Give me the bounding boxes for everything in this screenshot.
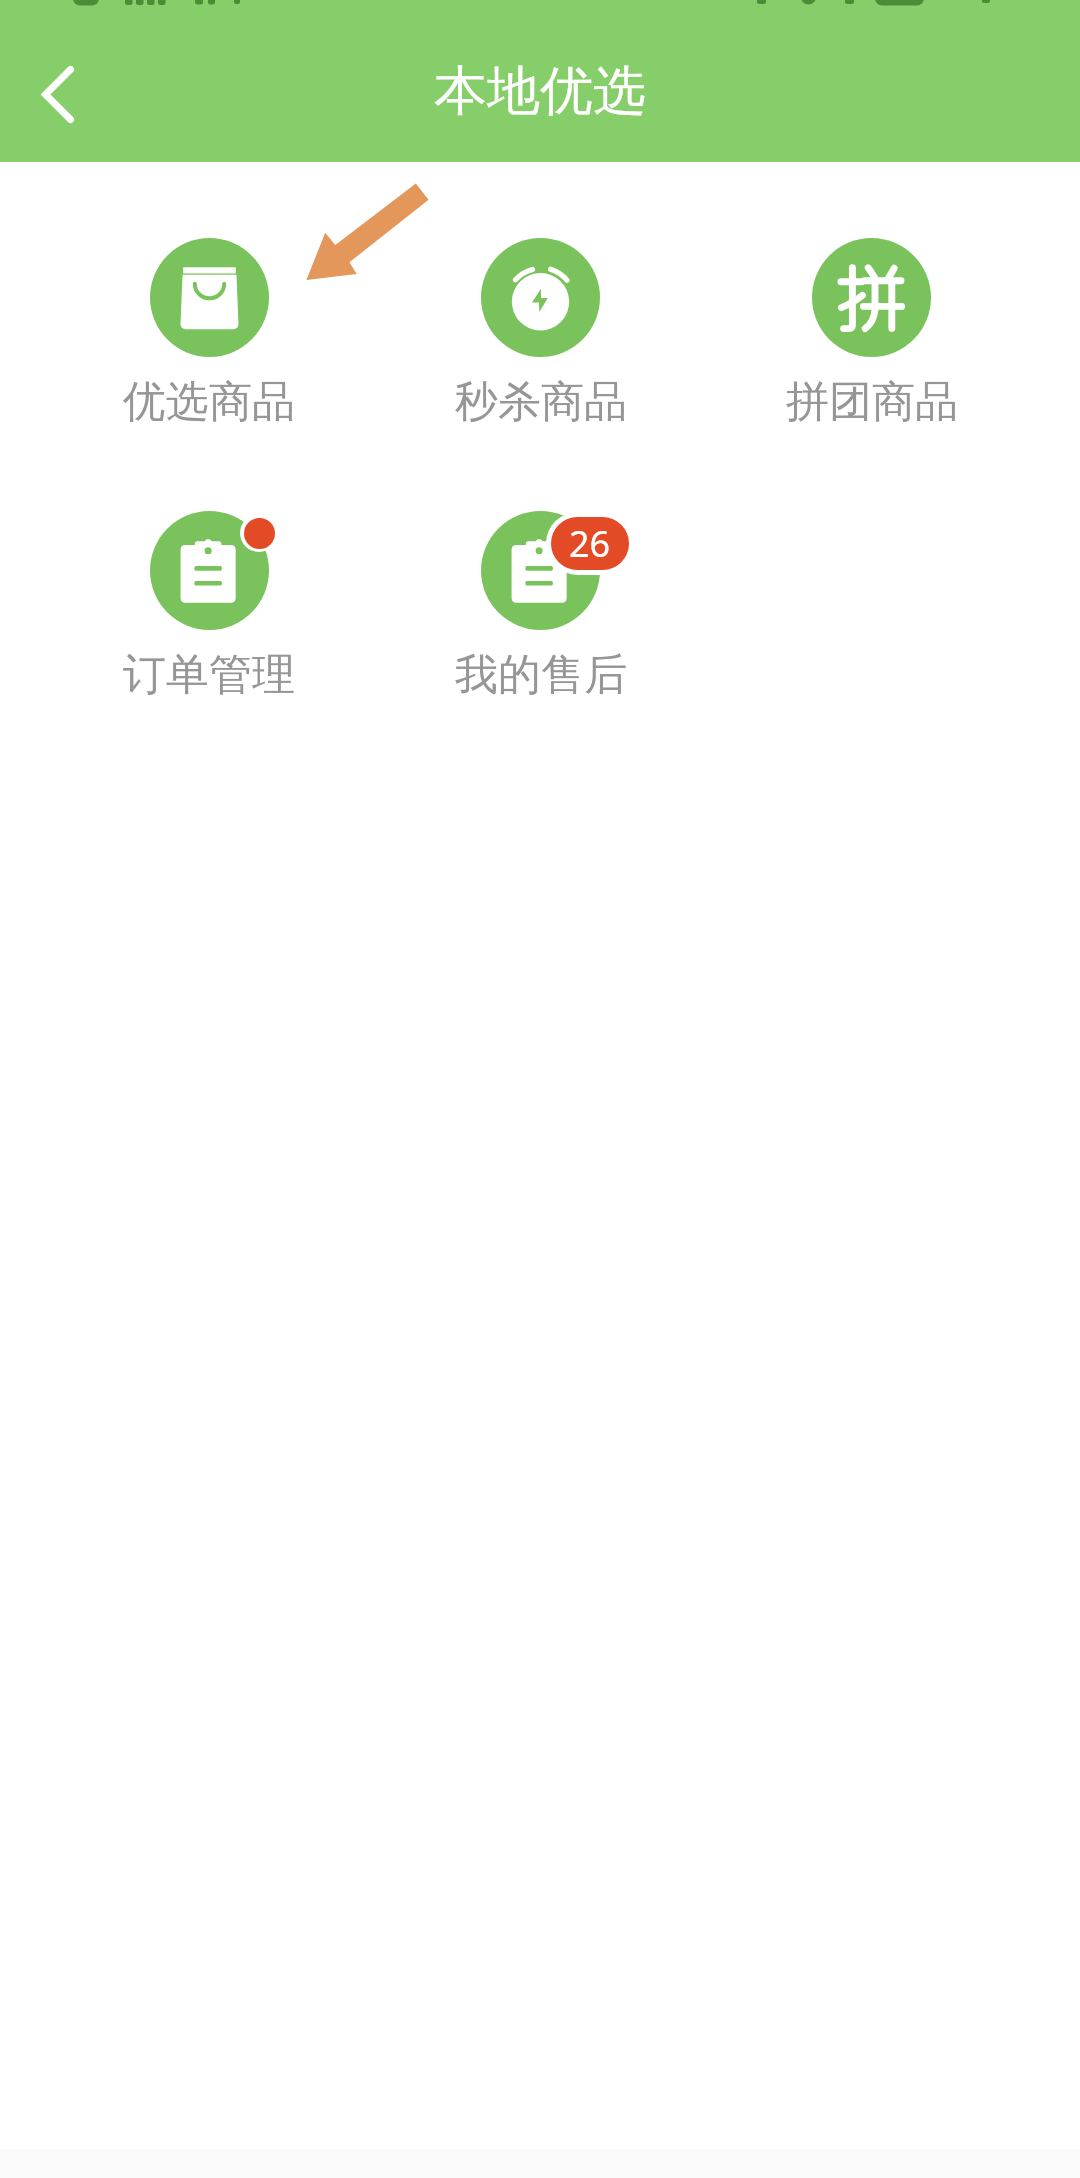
staticText: 本地优选 [434, 58, 646, 125]
button[interactable]: 优选商品 [43, 238, 375, 429]
button[interactable]: 秒杀商品 [375, 238, 706, 429]
button[interactable]: 26 [375, 511, 706, 702]
button[interactable]: 拼团商品 [706, 238, 1037, 429]
staticText: 我的售后 [455, 648, 627, 702]
button[interactable]: Back [18, 54, 98, 134]
staticText: 订单管理 [123, 648, 295, 702]
button[interactable]: 订单管理 [43, 511, 375, 702]
staticText: 拼团商品 [786, 375, 958, 429]
staticText: 26 [569, 519, 611, 568]
staticText: 秒杀商品 [455, 375, 627, 429]
staticText: 优选商品 [123, 375, 295, 429]
